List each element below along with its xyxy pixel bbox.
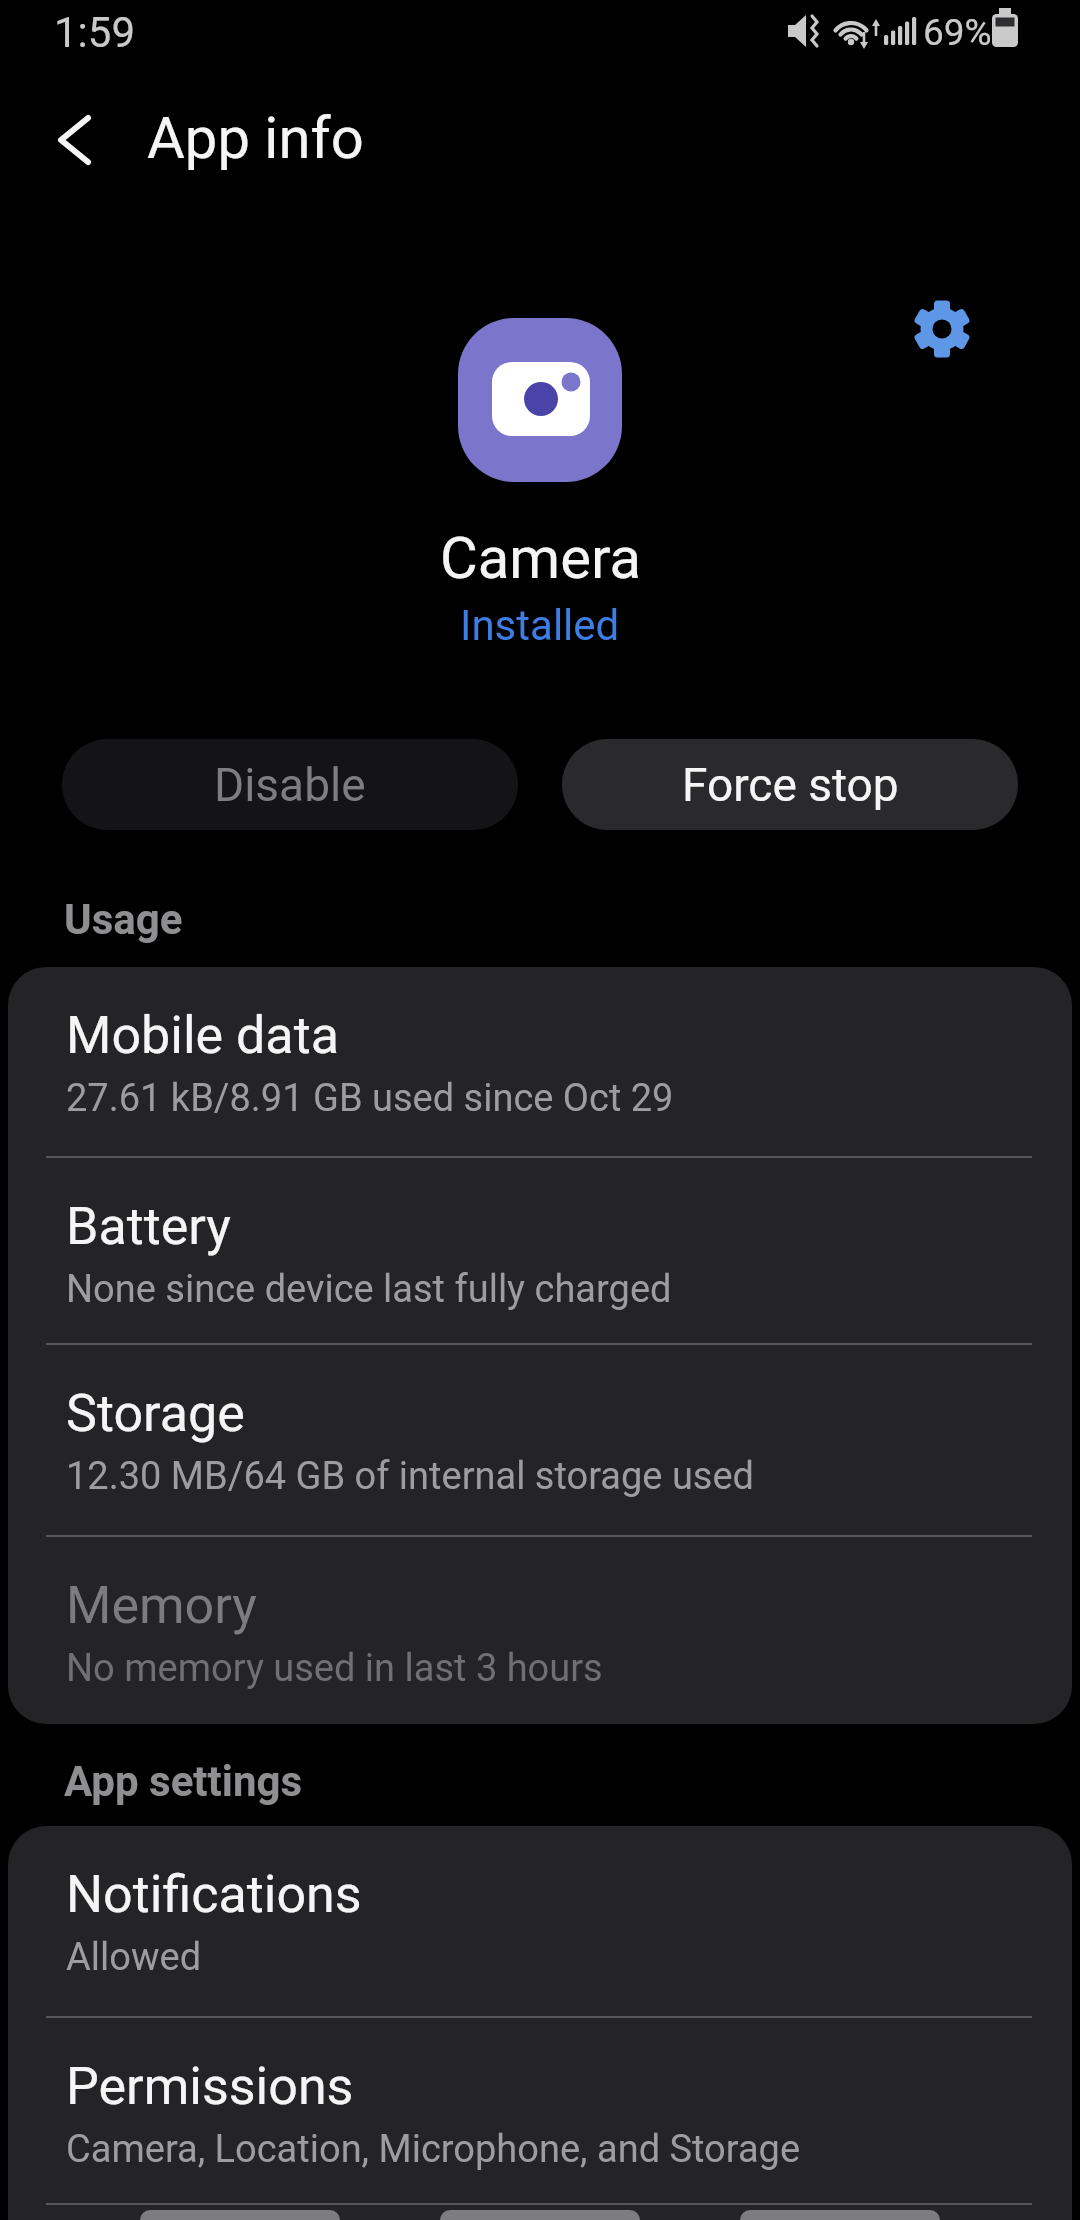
staticText: 1:59 — [54, 8, 135, 57]
staticText: Battery — [66, 1196, 231, 1257]
staticText: Camera, Location, Microphone, and Storag… — [66, 2127, 801, 2172]
button[interactable]: Force stop — [562, 739, 1018, 830]
staticText: No memory used in last 3 hours — [66, 1646, 603, 1691]
staticText: Mobile data — [66, 1005, 339, 1066]
staticText: 69% — [923, 11, 992, 54]
staticText: Notifications — [66, 1864, 362, 1925]
staticText: Storage — [66, 1383, 245, 1444]
button[interactable]: Notifications — [8, 1826, 1072, 2016]
staticText: Allowed — [66, 1935, 202, 1980]
button[interactable] — [440, 2210, 640, 2220]
button[interactable] — [740, 2210, 940, 2220]
button[interactable]: Permissions — [8, 2018, 1072, 2203]
button[interactable] — [36, 105, 112, 175]
staticText: Camera — [440, 524, 641, 592]
staticText: App info — [147, 104, 364, 172]
staticText: Installed — [460, 601, 620, 650]
staticText: Force stop — [682, 758, 899, 812]
button[interactable]: Battery — [8, 1158, 1072, 1343]
button[interactable]: Memory — [8, 1537, 1072, 1722]
staticText: Permissions — [66, 2056, 354, 2117]
button[interactable]: Storage — [8, 1345, 1072, 1535]
button[interactable]: Disable — [62, 739, 518, 830]
staticText: App settings — [64, 1757, 303, 1806]
staticText: Usage — [64, 895, 183, 944]
staticText: Memory — [66, 1575, 257, 1636]
staticText: 12.30 MB/64 GB of internal storage used — [66, 1454, 755, 1499]
staticText: None since device last fully charged — [66, 1267, 672, 1312]
staticText: 27.61 kB/8.91 GB used since Oct 29 — [66, 1076, 674, 1121]
button[interactable] — [140, 2210, 340, 2220]
button[interactable] — [912, 299, 972, 359]
button[interactable]: Mobile data — [8, 967, 1072, 1156]
staticText: Disable — [214, 758, 366, 812]
